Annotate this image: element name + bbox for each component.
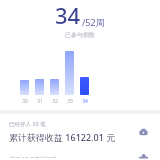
staticText: 已经存入 53 笔 — [9, 120, 46, 128]
other: Savings — [135, 124, 151, 140]
button[interactable]: 31 — [33, 79, 46, 105]
button[interactable]: 33 — [63, 51, 76, 105]
staticText: 34 — [82, 98, 88, 105]
button[interactable]: 使用 47 次复利收益 — [0, 153, 160, 160]
staticText: 32 — [52, 98, 58, 105]
staticText: 30 — [22, 98, 28, 105]
button[interactable]: 34 — [78, 77, 91, 105]
other: Redeem — [135, 155, 151, 158]
staticText: 33 — [67, 98, 73, 105]
staticText: 34 — [55, 0, 81, 30]
button[interactable]: 30 — [18, 80, 31, 105]
staticText: 使用 47 次复利收益 — [9, 155, 57, 158]
button[interactable]: 已经存入 53 笔 — [0, 118, 160, 145]
staticText: /52周 — [82, 16, 105, 28]
staticText: 已参与期数 — [0, 31, 160, 39]
button[interactable]: 32 — [48, 79, 61, 105]
staticText: 累计获得收益 16122.01 元 — [9, 131, 116, 143]
staticText: 31 — [37, 98, 43, 105]
